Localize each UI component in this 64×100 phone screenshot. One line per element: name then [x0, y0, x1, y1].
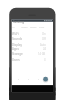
staticText: Device [30, 26, 37, 29]
button[interactable]: All [11, 25, 18, 28]
button[interactable]: Wi-Fi [10, 31, 47, 36]
staticText: System [39, 26, 46, 29]
staticText: 24 [43, 47, 46, 51]
staticText: Settings [13, 20, 25, 24]
staticText: Wi-Fi [12, 32, 19, 36]
button[interactable]: Sounds [10, 36, 47, 41]
button[interactable]: Network [20, 25, 27, 28]
staticText: Off [42, 37, 46, 41]
button[interactable]: Home [27, 78, 30, 81]
button[interactable]: Apps [10, 46, 47, 51]
staticText: On [42, 32, 46, 36]
staticText: Auto [40, 43, 46, 47]
staticText: 3 [44, 58, 46, 62]
staticText: Sounds [12, 37, 23, 41]
button[interactable]: Display [10, 42, 47, 47]
button[interactable]: Device [29, 25, 36, 28]
staticText: Apps [12, 47, 19, 51]
staticText: Network [21, 26, 28, 29]
button[interactable]: Users [10, 57, 47, 62]
staticText: Storage [12, 52, 23, 56]
button[interactable]: System [38, 25, 45, 28]
staticText: Display [12, 43, 22, 47]
button[interactable]: Back [17, 78, 20, 81]
staticText: 14 GB [38, 52, 46, 56]
button[interactable]: Storage [10, 51, 47, 56]
staticText: Users [12, 58, 20, 62]
button[interactable]: Settings [12, 20, 24, 24]
button[interactable]: Recents [37, 78, 40, 81]
staticText: All [12, 26, 15, 29]
